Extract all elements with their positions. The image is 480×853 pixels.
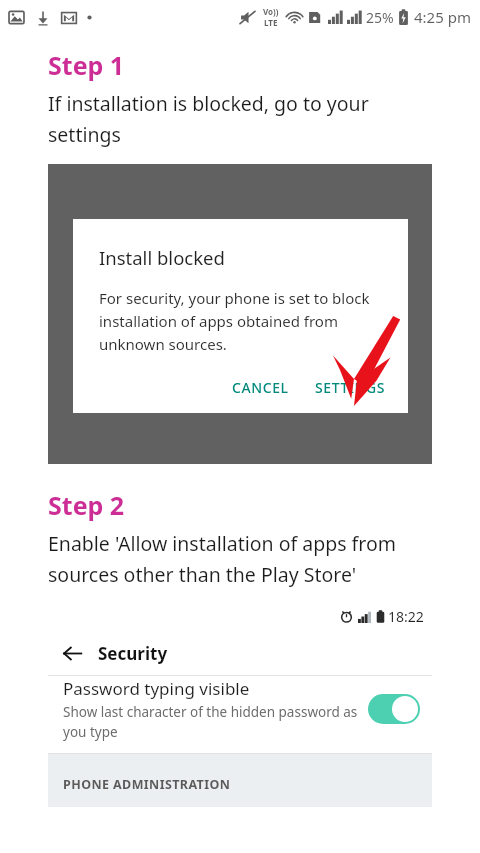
- staticText: CANCEL: [232, 378, 289, 397]
- staticText: Password typing visible: [63, 677, 250, 700]
- staticText: Vo)): [263, 6, 279, 17]
- staticText: Enable 'Allow installation of apps from …: [48, 530, 446, 588]
- staticText: Security: [98, 642, 168, 665]
- staticText: LTE: [264, 17, 278, 28]
- button[interactable]: Password typing visible toggle, on: [368, 694, 420, 724]
- staticText: Step 2: [48, 488, 125, 522]
- staticText: Install blocked: [99, 245, 225, 270]
- staticText: PHONE ADMINISTRATION: [63, 776, 231, 793]
- other: Arrow pointing to Settings: [333, 316, 403, 406]
- staticText: Step 1: [48, 48, 125, 82]
- staticText: 4:25 pm: [414, 7, 471, 27]
- button[interactable]: Password typing visible: [48, 676, 432, 753]
- button[interactable]: SETTINGS: [309, 374, 392, 401]
- button[interactable]: CANCEL: [226, 374, 295, 401]
- staticText: SETTINGS: [315, 378, 386, 397]
- staticText: For security, your phone is set to block…: [99, 288, 392, 354]
- staticText: 25%: [366, 8, 394, 27]
- staticText: If installation is blocked, go to your s…: [48, 90, 432, 148]
- button[interactable]: Back: [56, 637, 88, 669]
- staticText: Show last character of the hidden passwo…: [63, 703, 360, 741]
- staticText: 18:22: [388, 607, 424, 626]
